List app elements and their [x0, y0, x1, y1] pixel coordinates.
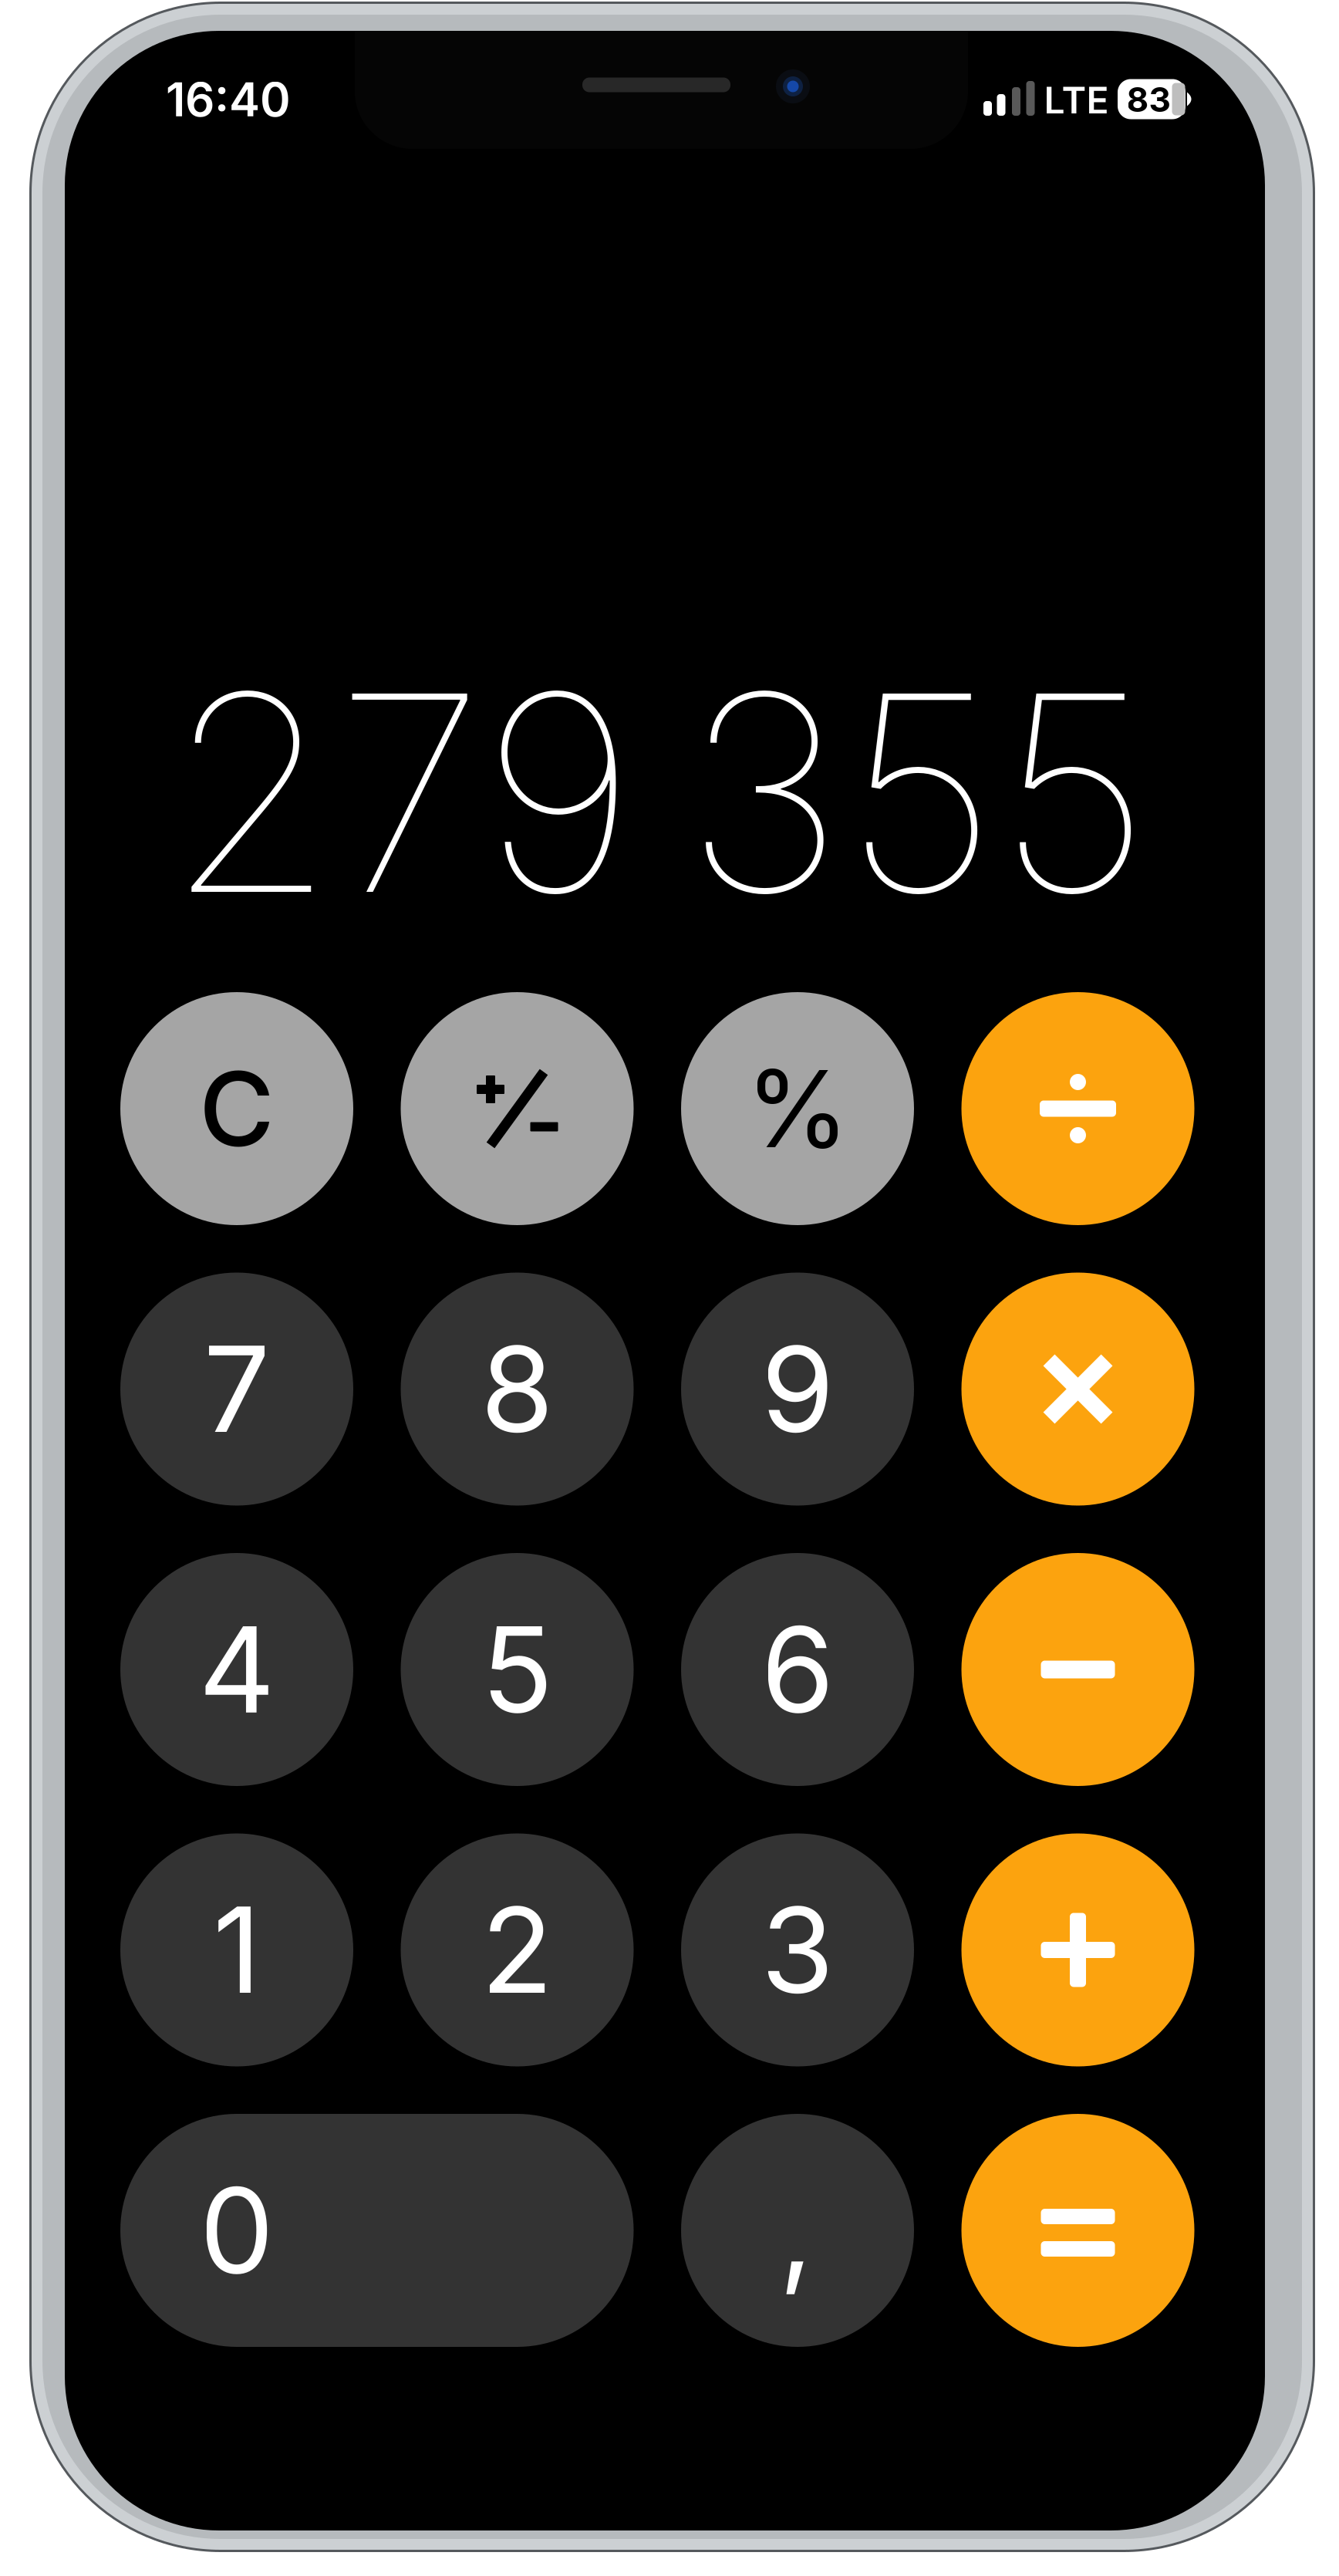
staticText: , [779, 2159, 813, 2302]
button[interactable]: 8 [401, 1273, 634, 1506]
button[interactable]: Multiply [961, 1273, 1194, 1506]
button[interactable]: Toggle sign [401, 992, 634, 1225]
button[interactable]: 7 [120, 1273, 353, 1506]
staticText: 7 [203, 1317, 270, 1461]
staticText: 8 [481, 1317, 554, 1461]
staticText: 1 [213, 1878, 261, 2021]
button[interactable]: 2 [401, 1833, 634, 2066]
button[interactable]: , [681, 2114, 914, 2347]
staticText: 83 [1127, 79, 1170, 120]
button[interactable]: 4 [120, 1553, 353, 1786]
button[interactable]: 1 [120, 1833, 353, 2066]
staticText: % [745, 1045, 850, 1173]
staticText: 3 [761, 1878, 834, 2021]
staticText: 5 [481, 1598, 553, 1741]
staticText: 0 [199, 2159, 274, 2302]
button[interactable]: 6 [681, 1553, 914, 1786]
button[interactable]: 5 [401, 1553, 634, 1786]
staticText: 4 [199, 1598, 275, 1741]
button[interactable]: 3 [681, 1833, 914, 2066]
button[interactable]: Minus [961, 1553, 1194, 1786]
staticText: 2 [481, 1878, 553, 2021]
button[interactable]: Divide [961, 992, 1194, 1225]
staticText: 279 355 [166, 628, 1150, 958]
staticText: LTE [1044, 78, 1109, 123]
staticText: 16:40 [166, 72, 291, 128]
button[interactable]: 9 [681, 1273, 914, 1506]
button[interactable]: C [120, 992, 353, 1225]
button[interactable]: Plus [961, 1833, 1194, 2066]
staticText: 9 [761, 1317, 834, 1461]
button[interactable]: 0 [120, 2114, 634, 2347]
staticText: 6 [761, 1598, 834, 1741]
button[interactable]: Equals [961, 2114, 1194, 2347]
button[interactable]: % [681, 992, 914, 1225]
staticText: C [199, 1046, 275, 1171]
